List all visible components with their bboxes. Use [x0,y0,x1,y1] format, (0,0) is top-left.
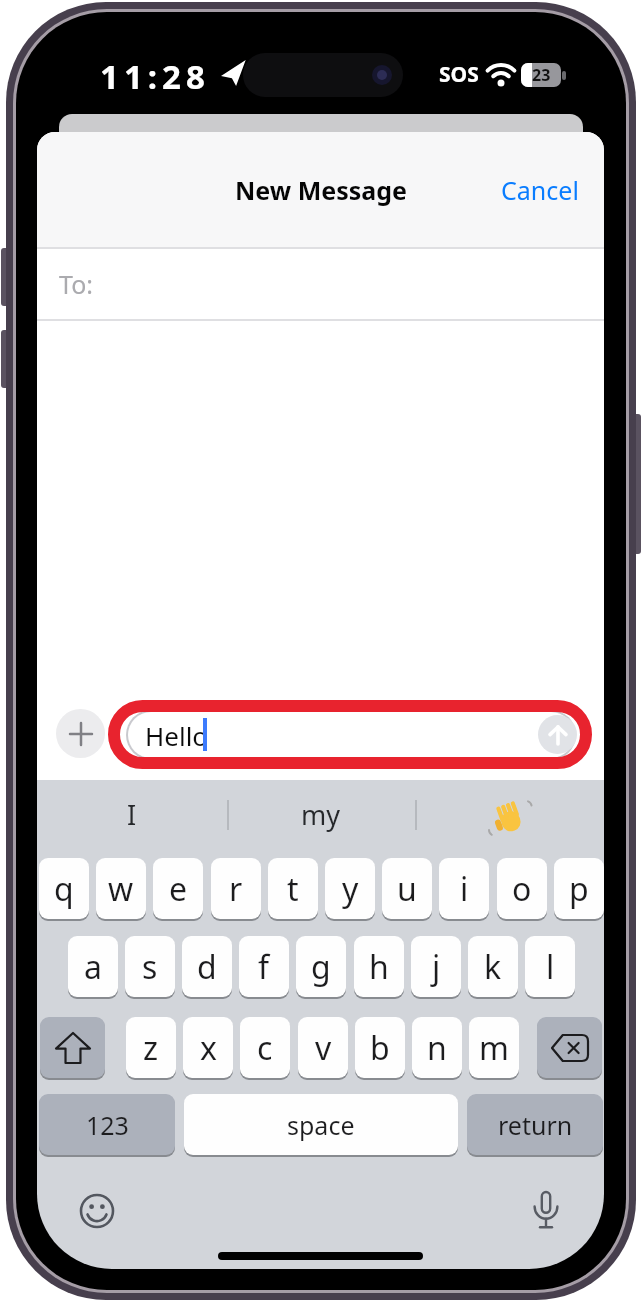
button[interactable]: t [268,858,318,919]
staticText: x [200,1026,217,1070]
staticText: To: [59,267,93,301]
button[interactable]: Hello [126,710,576,760]
button[interactable]: y [325,858,375,919]
button[interactable]: e [153,858,203,919]
button[interactable]: l [525,936,575,997]
button[interactable]: n [412,1017,462,1078]
button[interactable] [537,1017,602,1078]
staticText: v [315,1026,332,1070]
staticText: y [342,867,359,911]
staticText: j [432,945,441,989]
button[interactable]: z [126,1017,176,1078]
staticText: h [369,945,389,989]
staticText: z [143,1026,159,1070]
button[interactable]: 123 [39,1094,175,1155]
button[interactable]: c [240,1017,290,1078]
button[interactable]: Cancel [501,173,579,207]
staticText: g [311,945,331,989]
staticText: New Message [235,173,407,207]
staticText: Cancel [501,173,579,207]
staticText: return [498,1108,573,1142]
staticText: c [257,1026,273,1070]
staticText: I [127,796,137,833]
button[interactable]: j [411,936,461,997]
button[interactable]: m [469,1017,519,1078]
button[interactable] [538,715,577,754]
button[interactable]: i [439,858,489,919]
staticText: b [370,1026,390,1070]
button[interactable] [415,786,604,854]
button[interactable]: f [239,936,289,997]
staticText: SOS [439,60,479,89]
staticText: space [287,1108,355,1142]
button[interactable] [79,1193,115,1229]
button[interactable] [56,709,105,758]
staticText: n [427,1026,447,1070]
button[interactable]: u [382,858,432,919]
staticText: i [460,867,469,911]
button[interactable]: x [183,1017,233,1078]
button[interactable]: To: [37,249,604,319]
staticText: p [569,867,589,911]
staticText: s [142,945,158,989]
button[interactable]: I [37,780,227,848]
staticText: o [512,867,532,911]
button[interactable]: k [468,936,518,997]
staticText: 123 [86,1108,129,1142]
button[interactable]: g [296,936,346,997]
staticText: k [484,945,502,989]
button[interactable]: p [554,858,604,919]
button[interactable]: o [497,858,547,919]
staticText: my [301,796,341,833]
staticText: t [287,867,299,911]
button[interactable]: a [68,936,118,997]
button[interactable]: return [467,1094,603,1155]
staticText: f [258,945,270,989]
staticText: m [479,1026,509,1070]
staticText: w [108,867,134,911]
staticText: l [546,945,555,989]
button[interactable]: h [354,936,404,997]
staticText: 11:28 [100,54,210,94]
button[interactable]: r [211,858,261,919]
staticText: d [197,945,217,989]
button[interactable]: w [96,858,146,919]
button[interactable]: d [182,936,232,997]
button[interactable]: v [298,1017,348,1078]
staticText: r [229,867,243,911]
staticText: Hello [145,718,209,753]
button[interactable] [531,1192,561,1232]
staticText: q [54,867,74,911]
button[interactable]: s [125,936,175,997]
staticText: u [397,867,417,911]
button[interactable]: my [227,780,415,848]
button[interactable]: q [39,858,89,919]
staticText: e [169,867,188,911]
staticText: a [84,945,102,989]
staticText: 23 [532,64,551,86]
button[interactable] [40,1017,105,1078]
button[interactable]: space [184,1094,458,1155]
button[interactable]: b [355,1017,405,1078]
